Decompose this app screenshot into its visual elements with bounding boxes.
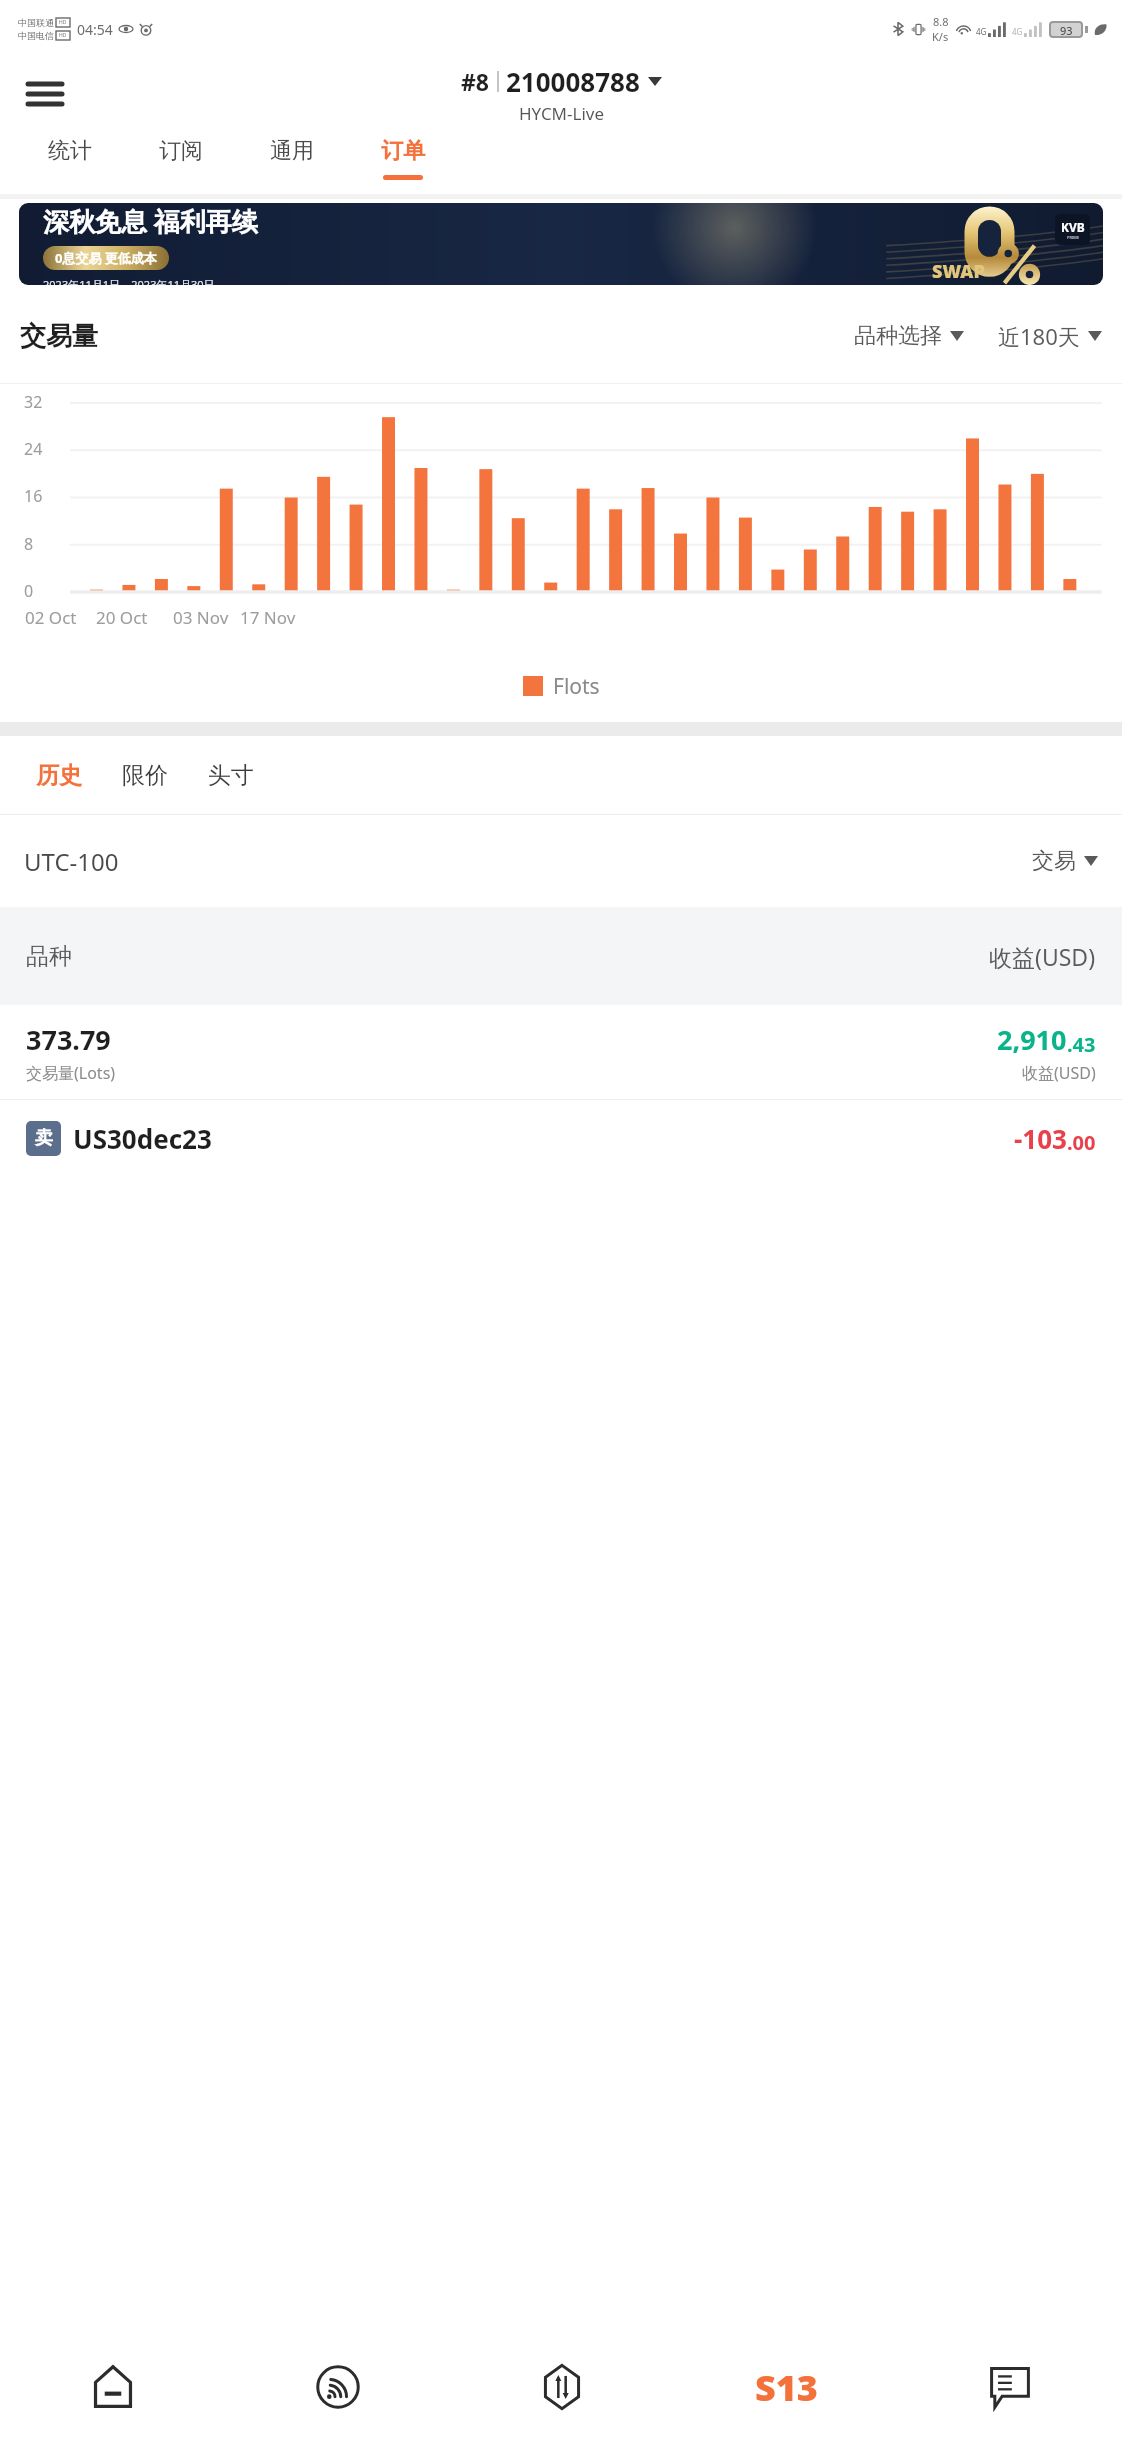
staticText: K/s xyxy=(932,29,949,44)
staticText: KVB xyxy=(1061,219,1085,235)
staticText: 2,910 xyxy=(997,1021,1067,1058)
staticText: 近180天 xyxy=(998,321,1080,351)
staticText: -103 xyxy=(1014,1121,1067,1156)
button[interactable]: 通用 xyxy=(236,130,347,194)
staticText: US30dec23 xyxy=(73,1121,212,1156)
staticText: 品种 xyxy=(26,942,72,971)
button[interactable]: 品种选择 xyxy=(854,322,964,350)
staticText: 32 xyxy=(24,391,43,413)
staticText: 17 Nov xyxy=(240,606,296,629)
staticText: 统计 xyxy=(48,137,92,165)
staticText: .43 xyxy=(1067,1031,1096,1058)
staticText: 4G xyxy=(1012,26,1023,37)
staticText: 93 xyxy=(1060,23,1073,36)
staticText: 04:54 xyxy=(77,20,113,39)
staticText: 品种选择 xyxy=(854,322,942,350)
staticText: 交易 xyxy=(1032,847,1076,875)
staticText: PRIME xyxy=(1067,235,1080,240)
button[interactable]: Menu xyxy=(18,67,72,121)
button[interactable]: 近180天 xyxy=(998,321,1102,351)
staticText: 0 xyxy=(24,580,34,602)
staticText: Flots xyxy=(553,672,600,701)
button[interactable]: Home xyxy=(0,2332,225,2442)
button[interactable]: 卖 xyxy=(26,1100,1096,1176)
staticText: 订单 xyxy=(381,137,425,165)
staticText: 订阅 xyxy=(159,137,203,165)
button[interactable]: Messages xyxy=(898,2332,1122,2442)
button[interactable]: Signals xyxy=(225,2332,450,2442)
button[interactable]: 头寸 xyxy=(194,751,268,800)
staticText: .00 xyxy=(1067,1129,1096,1156)
button[interactable]: 订阅 xyxy=(125,130,236,194)
button[interactable]: Trade xyxy=(450,2332,674,2442)
staticText: 02 Oct xyxy=(25,606,77,629)
staticText: 深秋免息 福利再续 xyxy=(43,203,258,239)
staticText: 20 Oct xyxy=(96,606,148,629)
staticText: 收益(USD) xyxy=(1022,1062,1096,1084)
button[interactable]: 交易 xyxy=(1032,847,1098,875)
staticText: 24 xyxy=(24,438,43,460)
staticText: 中国电信 xyxy=(18,30,54,41)
staticText: 03 Nov xyxy=(173,606,229,629)
staticText: 收益(USD) xyxy=(989,941,1096,972)
staticText: HD xyxy=(59,19,67,26)
staticText: 中国联通 xyxy=(18,17,54,28)
staticText: 2023年11月1日 – 2023年11月30日 xyxy=(43,277,215,285)
staticText: UTC-100 xyxy=(24,845,119,878)
button[interactable]: S13 xyxy=(674,2332,898,2442)
button[interactable]: 限价 xyxy=(108,751,182,800)
staticText: 373.79 xyxy=(26,1021,111,1058)
staticText: 210008788 xyxy=(506,64,640,99)
staticText: 历史 xyxy=(36,761,82,790)
staticText: S13 xyxy=(755,2363,818,2412)
staticText: 卖 xyxy=(35,1127,53,1150)
staticText: HYCM-Live xyxy=(519,102,605,125)
staticText: 交易量(Lots) xyxy=(26,1062,116,1084)
button[interactable]: 订单 xyxy=(347,130,458,194)
button[interactable]: 统计 xyxy=(14,130,125,194)
staticText: HD xyxy=(59,32,67,39)
staticText: 交易量 xyxy=(20,320,98,353)
staticText: 16 xyxy=(24,485,43,507)
staticText: SWAP xyxy=(932,259,985,284)
staticText: #8 xyxy=(461,66,490,97)
staticText: 8 xyxy=(24,533,34,555)
staticText: 4G xyxy=(976,26,987,37)
button[interactable]: 历史 xyxy=(22,751,96,800)
staticText: 8.8 xyxy=(933,14,949,29)
button[interactable]: 深秋免息 福利再续 xyxy=(19,203,1103,285)
staticText: 限价 xyxy=(122,761,168,790)
staticText: 通用 xyxy=(270,137,314,165)
staticText: 0息交易 更低成本 xyxy=(55,249,157,267)
staticText: 头寸 xyxy=(208,761,254,790)
button[interactable]: #8 xyxy=(461,64,662,125)
